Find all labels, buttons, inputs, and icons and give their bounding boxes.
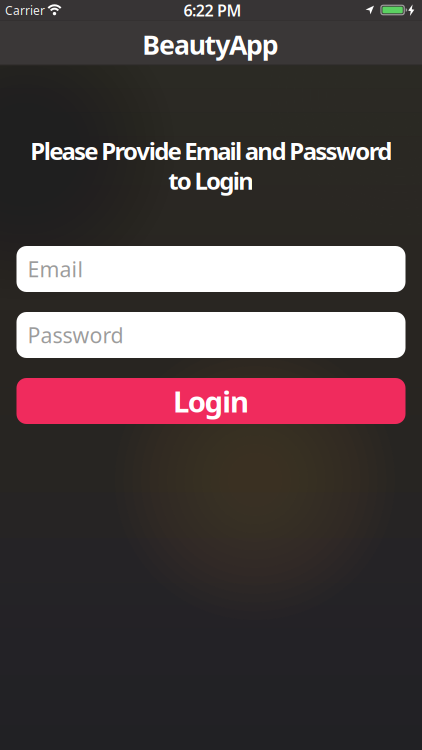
button[interactable]: Password — [16, 312, 405, 358]
staticText: Please Provide Email and Password to Log… — [30, 135, 392, 196]
staticText: BeautyApp — [142, 27, 279, 62]
staticText: Login — [173, 381, 249, 420]
staticText: Carrier — [5, 2, 45, 18]
button[interactable]: Email — [16, 246, 405, 292]
staticText: Email — [27, 255, 83, 283]
button[interactable]: Login — [16, 378, 405, 424]
staticText: 6:22 PM — [183, 0, 242, 21]
staticText: Password — [27, 321, 123, 349]
